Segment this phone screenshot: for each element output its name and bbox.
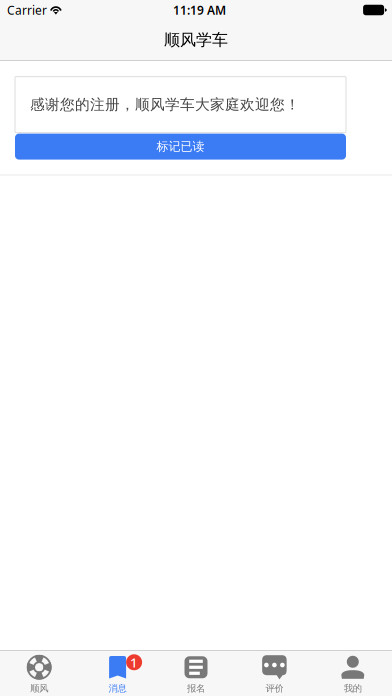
button[interactable]: 报名 <box>157 651 235 696</box>
staticText: 顺风 <box>30 683 48 694</box>
staticText: 报名 <box>187 683 205 694</box>
staticText: 标记已读 <box>156 139 204 154</box>
staticText: 顺风学车 <box>164 30 228 50</box>
staticText: Carrier <box>7 2 47 18</box>
button[interactable]: 评价 <box>235 651 314 696</box>
staticText: 感谢您的注册，顺风学车大家庭欢迎您！ <box>30 96 300 114</box>
staticText: 评价 <box>265 683 283 694</box>
button[interactable]: 顺风 <box>0 651 78 696</box>
staticText: 1 <box>130 653 138 671</box>
staticText: 11:19 AM <box>173 2 226 18</box>
button[interactable]: 1 <box>78 651 157 696</box>
staticText: 我的 <box>344 683 362 694</box>
button[interactable]: 标记已读 <box>15 134 346 160</box>
button[interactable]: 我的 <box>314 651 392 696</box>
staticText: 消息 <box>109 683 127 694</box>
